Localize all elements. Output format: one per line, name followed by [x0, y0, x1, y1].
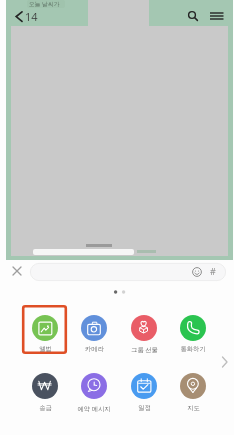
button[interactable]: 그룹 선물 — [126, 314, 162, 361]
staticText: 예약 메시지 — [77, 404, 111, 413]
button[interactable] — [9, 263, 25, 279]
staticText: 14 — [25, 9, 38, 24]
button[interactable]: # — [210, 265, 216, 277]
button[interactable]: 지도 — [175, 372, 211, 420]
staticText: 통화하기 — [180, 345, 206, 353]
button[interactable]: 14 — [12, 7, 44, 27]
button[interactable] — [219, 354, 231, 370]
button[interactable] — [184, 7, 201, 24]
button[interactable]: 카메라 — [76, 314, 112, 361]
button[interactable] — [30, 263, 226, 281]
staticText: 앨범 — [39, 345, 52, 353]
button[interactable] — [191, 266, 203, 278]
staticText: 일정 — [138, 404, 151, 412]
button[interactable]: 통화하기 — [175, 314, 211, 361]
staticText: 그룹 선물 — [131, 345, 158, 354]
button[interactable]: 송금 — [27, 372, 63, 420]
staticText: 송금 — [39, 404, 52, 412]
button[interactable]: 예약 메시지 — [76, 372, 112, 420]
button[interactable] — [208, 7, 226, 24]
button[interactable]: 앨범 — [27, 314, 63, 361]
staticText: 지도 — [187, 404, 200, 412]
button[interactable]: 일정 — [126, 372, 162, 420]
staticText: 오늘 날씨가 — [29, 0, 60, 8]
staticText: 카메라 — [85, 345, 104, 353]
